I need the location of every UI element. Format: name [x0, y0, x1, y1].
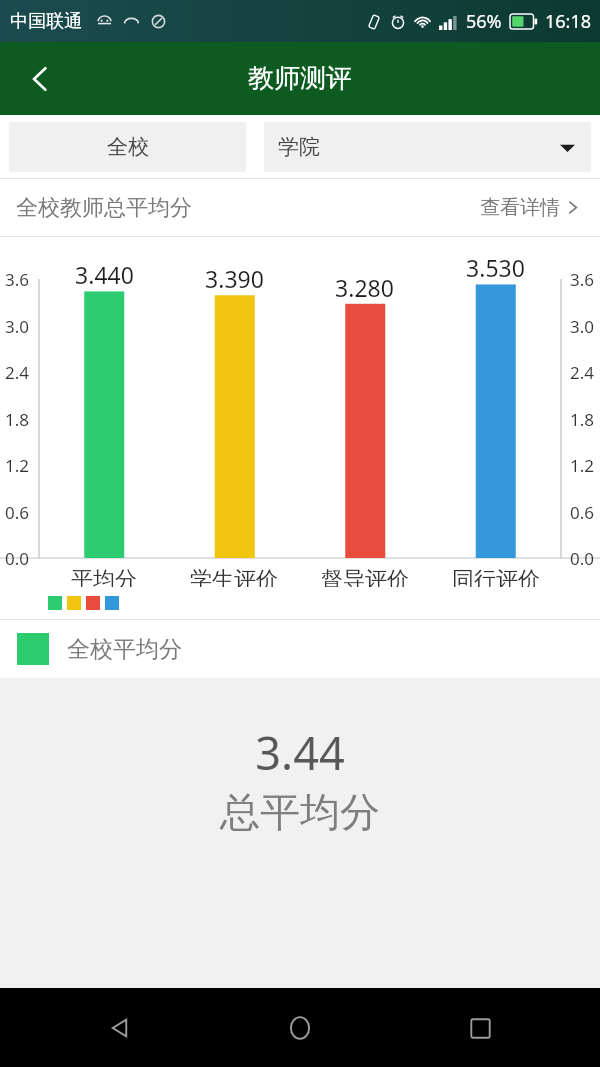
- staticText: 学院: [278, 134, 320, 160]
- staticText: 中国联通: [10, 10, 82, 33]
- staticText: 学生评价: [190, 566, 278, 594]
- button[interactable]: Home: [270, 998, 330, 1058]
- staticText: 1.8: [5, 408, 30, 431]
- button[interactable]: Back: [14, 53, 66, 105]
- button[interactable]: 全校平均分: [17, 620, 600, 678]
- button[interactable]: 学院: [264, 122, 591, 172]
- staticText: 全校教师总平均分: [16, 194, 192, 222]
- staticText: 3.44: [255, 722, 345, 783]
- staticText: 3.6: [5, 268, 30, 291]
- staticText: 3.440: [75, 259, 134, 290]
- button[interactable]: 全校: [9, 122, 246, 172]
- staticText: 3.0: [570, 315, 595, 338]
- staticText: 查看详情: [480, 195, 560, 220]
- staticText: 2.4: [570, 361, 595, 384]
- staticText: 2.4: [5, 361, 30, 384]
- button[interactable]: Recent apps: [450, 998, 510, 1058]
- button[interactable]: Back: [90, 998, 150, 1058]
- staticText: 0.0: [570, 547, 595, 570]
- staticText: 督导评价: [321, 566, 409, 594]
- staticText: 全校平均分: [67, 635, 182, 664]
- staticText: 16:18: [545, 9, 592, 34]
- staticText: 3.280: [335, 272, 394, 303]
- staticText: 56%: [466, 9, 502, 34]
- staticText: 1.2: [5, 454, 30, 477]
- staticText: 1.8: [570, 408, 595, 431]
- staticText: 同行评价: [452, 566, 540, 594]
- staticText: 总平均分: [220, 787, 380, 837]
- staticText: 0.6: [570, 501, 595, 524]
- staticText: 0.6: [5, 501, 30, 524]
- staticText: 0.0: [5, 547, 30, 570]
- staticText: 3.0: [5, 315, 30, 338]
- button[interactable]: 查看详情: [476, 191, 584, 224]
- staticText: 3.530: [466, 252, 525, 283]
- staticText: 1.2: [570, 454, 595, 477]
- staticText: 3.390: [205, 263, 264, 294]
- staticText: 教师测评: [248, 62, 352, 95]
- staticText: 3.6: [570, 268, 595, 291]
- staticText: 全校: [107, 134, 149, 160]
- staticText: 平均分: [71, 566, 137, 594]
